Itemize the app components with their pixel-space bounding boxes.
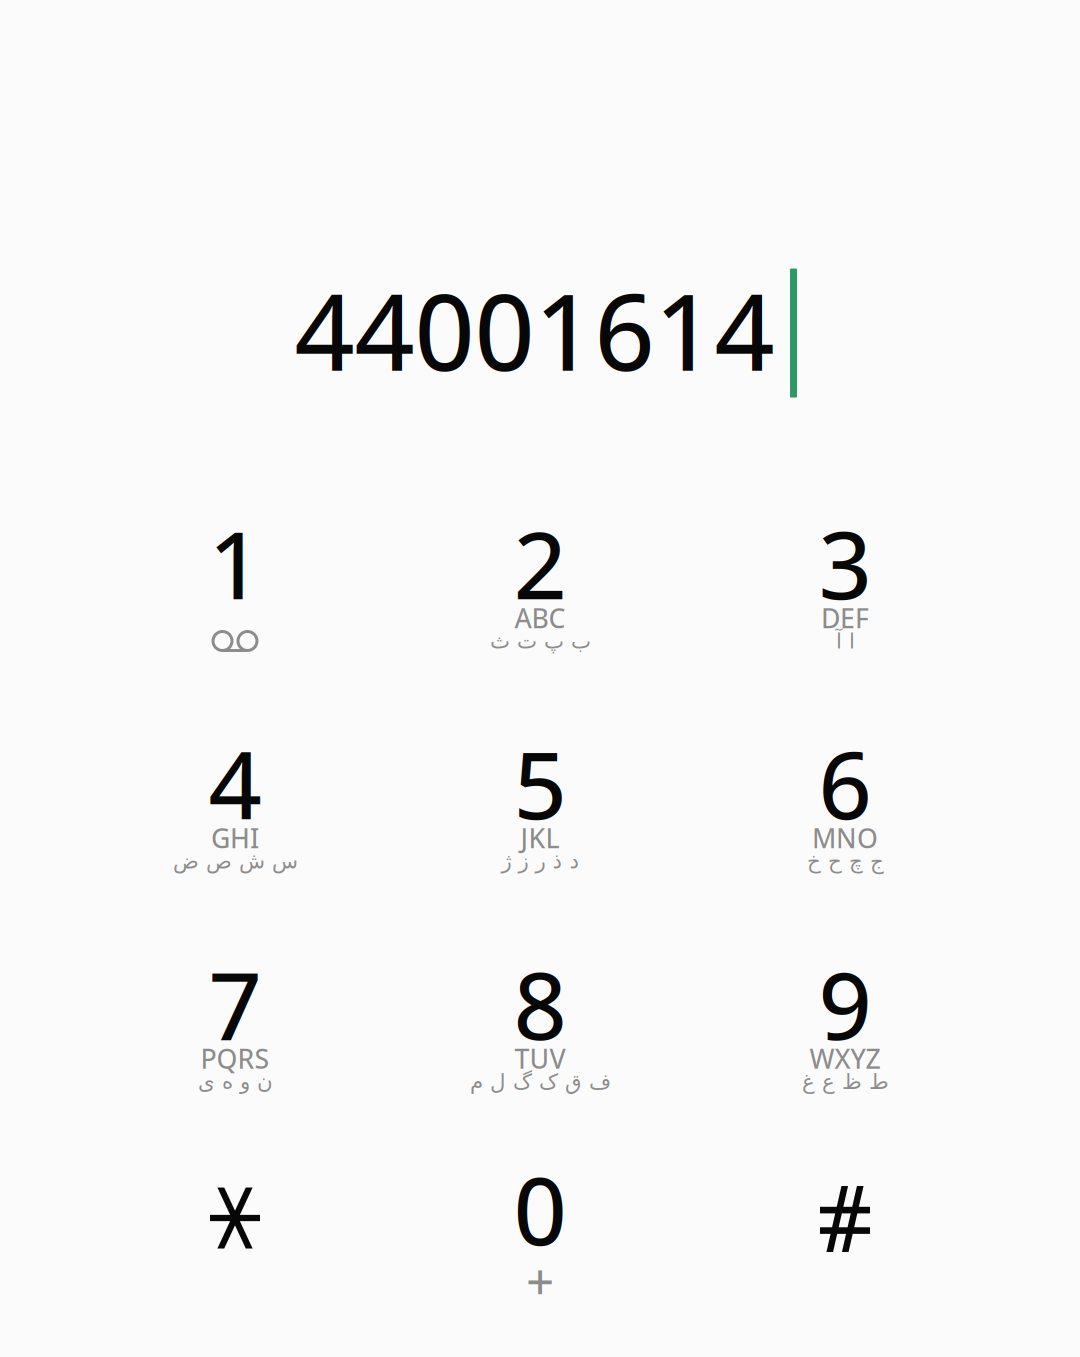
button[interactable]: 0 Plus [390,1109,690,1309]
staticText: 1 [208,499,261,626]
staticText: PQRS [200,1040,269,1077]
staticText: 7 [208,940,261,1067]
button[interactable]: 2 ABC [390,463,690,663]
staticText: 0 [513,1145,566,1272]
button[interactable]: 4 GHI [85,683,385,883]
staticText: ج چ ح خ [806,849,883,873]
staticText: MNO [812,820,878,856]
staticText: TUV [514,1040,565,1077]
staticText: 8 [513,940,566,1067]
staticText: 44001614 [294,258,774,402]
button[interactable]: Star [85,1109,385,1309]
staticText: 9 [818,940,871,1067]
button[interactable]: 5 JKL [390,683,690,883]
button[interactable]: 44001614 [254,255,814,405]
staticText: ن و ه ی [197,1069,272,1094]
staticText: DEF [821,600,869,636]
staticText: ا آ [835,629,854,653]
button[interactable]: Pound [695,1109,995,1309]
staticText: ط ظ ع غ [801,1069,888,1094]
staticText: 4 [208,719,261,846]
staticText: ABC [514,600,565,636]
staticText: د ذ ر ز ژ [501,849,579,873]
staticText: 3 [818,499,871,626]
staticText: ف ق ک گ ل م [469,1069,610,1094]
button[interactable]: 1 Voicemail [85,463,385,663]
staticText: JKL [520,820,559,856]
staticText: WXYZ [809,1040,880,1077]
staticText: س ش ص ض [172,849,297,873]
button[interactable]: 3 DEF [695,463,995,663]
staticText: GHI [211,820,259,856]
staticText: 5 [513,719,566,846]
button[interactable]: 6 MNO [695,683,995,883]
button[interactable]: 7 PQRS [85,903,385,1103]
staticText: 2 [513,499,566,626]
staticText: ب پ ت ث [489,629,590,653]
button[interactable]: 9 WXYZ [695,903,995,1103]
staticText: 6 [818,719,871,846]
staticText: + [526,1246,554,1314]
button[interactable]: 8 TUV [390,903,690,1103]
